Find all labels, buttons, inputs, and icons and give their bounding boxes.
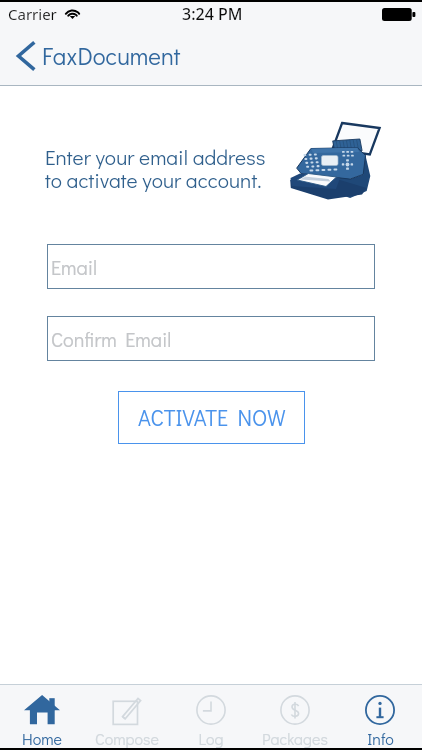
staticText: to activate your account. xyxy=(45,166,262,194)
staticText: FaxDocument xyxy=(42,40,181,71)
staticText: Email xyxy=(51,254,98,280)
button[interactable]: Confirm Email xyxy=(47,316,375,361)
button[interactable]: Compose xyxy=(85,685,169,750)
staticText: ACTIVATE NOW xyxy=(138,403,286,432)
staticText: Confirm Email xyxy=(51,326,172,352)
button[interactable]: Back xyxy=(10,36,40,76)
button[interactable]: Email xyxy=(47,244,375,289)
staticText: Enter your email address xyxy=(45,143,266,171)
staticText: Log xyxy=(198,728,224,749)
staticText: Info xyxy=(367,728,394,749)
button[interactable]: Packages xyxy=(253,685,337,750)
button[interactable]: Home xyxy=(0,685,84,750)
staticText: 3:24 PM xyxy=(182,3,243,25)
button[interactable]: Info xyxy=(338,685,422,750)
staticText: Home xyxy=(22,728,62,749)
button[interactable]: ACTIVATE NOW xyxy=(118,391,305,444)
button[interactable]: FaxDocument xyxy=(42,40,181,71)
button[interactable]: Log xyxy=(169,685,253,750)
staticText: Packages xyxy=(262,728,328,749)
staticText: Compose xyxy=(95,728,159,749)
staticText: Carrier xyxy=(8,4,57,24)
